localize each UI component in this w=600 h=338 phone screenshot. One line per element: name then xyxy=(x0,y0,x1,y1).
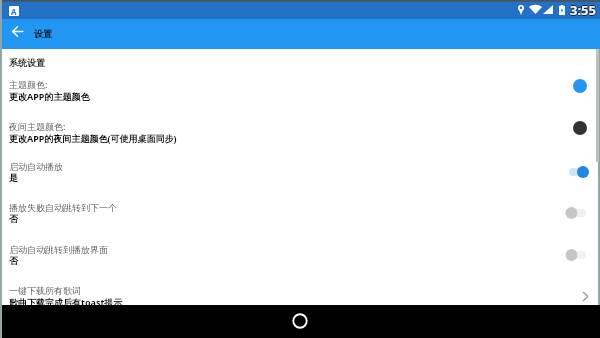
staticText: 系统设置 xyxy=(9,57,45,68)
button[interactable]: 启动自动播放 xyxy=(0,161,600,202)
staticText: 否 xyxy=(9,213,18,224)
staticText: 夜间主题颜色: xyxy=(9,120,66,132)
button[interactable]: 播放失败自动跳转到下一个 xyxy=(0,202,600,243)
staticText: 设置 xyxy=(34,28,52,39)
staticText: 歌曲下载完成后有toast提示 xyxy=(9,296,123,308)
staticText: 3:55 xyxy=(569,1,595,18)
staticText: 更改APP的主题颜色 xyxy=(9,90,90,102)
staticText: 启动自动跳转到播放界面 xyxy=(9,244,108,255)
staticText: A xyxy=(11,6,17,16)
button[interactable]: Home xyxy=(288,309,312,333)
staticText: 3:55 xyxy=(571,1,597,18)
staticText: 播放失败自动跳转到下一个 xyxy=(9,202,117,213)
staticText: 3:55 xyxy=(570,0,596,17)
staticText: 更改APP的夜间主题颜色(可使用桌面同步) xyxy=(9,132,177,144)
button[interactable]: 夜间主题颜色: xyxy=(0,120,600,161)
staticText: 一键下载所有歌词 xyxy=(9,285,81,296)
staticText: 是 xyxy=(9,172,18,183)
staticText: 启动自动播放 xyxy=(9,161,63,172)
button[interactable]: 主题颜色: xyxy=(0,78,600,119)
staticText: 否 xyxy=(9,255,18,266)
button[interactable]: 启动自动跳转到播放界面 xyxy=(0,244,600,285)
staticText: 3:55 xyxy=(570,2,596,19)
button[interactable]: 一键下载所有歌词 xyxy=(0,285,600,326)
staticText: 主题颜色: xyxy=(9,78,48,90)
button[interactable]: Back xyxy=(5,19,29,43)
staticText: 3:55 xyxy=(570,1,596,18)
